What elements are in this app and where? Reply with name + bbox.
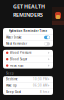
staticText: Sleep: [6, 72, 14, 75]
staticText: 06:30 AM: [33, 84, 47, 87]
staticText: Blood Pressure: [10, 51, 32, 54]
staticText: Meal Reminder: [6, 42, 27, 45]
staticText: 8 hrs: [40, 90, 47, 94]
button[interactable]: Heart Rate: [3, 63, 53, 69]
staticText: Sleep Goal: [6, 90, 21, 94]
staticText: Heart Rate: [10, 64, 24, 67]
staticText: Wake Up: [6, 84, 17, 87]
staticText: REMINDERS: [13, 11, 43, 18]
staticText: Hydration Reminder Time: [8, 29, 47, 33]
button[interactable]: Blood Pressure: [3, 50, 53, 56]
staticText: 10:30 PM: [33, 77, 47, 81]
button[interactable]: Sleep Goal: [3, 89, 53, 95]
staticText: Blood Sugar: [10, 57, 27, 61]
staticText: GET HEALTH: [13, 3, 45, 10]
button[interactable]: Meal Reminder: [3, 41, 53, 47]
button[interactable]: Wake Up: [3, 82, 53, 88]
staticText: Water Intake: [6, 36, 22, 39]
button[interactable]: Blood Sugar: [3, 56, 53, 62]
button[interactable]: Water Intake: [3, 34, 53, 40]
button[interactable]: Bedtime: [3, 76, 53, 82]
staticText: Bedtime: [6, 77, 18, 81]
